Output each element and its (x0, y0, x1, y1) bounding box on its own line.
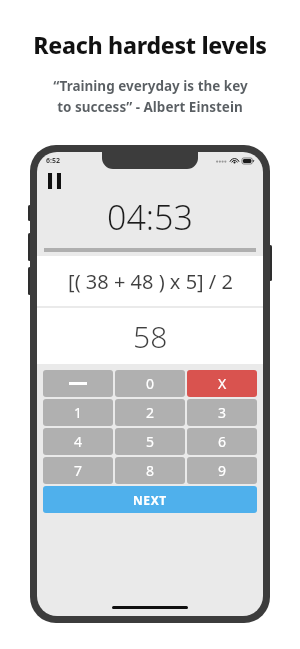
button[interactable]: 1 (43, 399, 113, 426)
button[interactable]: 2 (115, 399, 185, 426)
staticText: NEXT (133, 492, 167, 508)
staticText: 2 (146, 403, 155, 422)
staticText: 6 (218, 432, 227, 451)
button[interactable]: 8 (115, 457, 185, 484)
button[interactable]: 0 (115, 370, 185, 397)
button[interactable]: 3 (187, 399, 257, 426)
staticText: 6:52 (46, 156, 60, 166)
staticText: Reach hardest levels (33, 29, 267, 60)
staticText: 1 (74, 403, 83, 422)
button[interactable]: 7 (43, 457, 113, 484)
staticText: 8 (146, 461, 155, 480)
staticText: 58 (133, 316, 168, 357)
staticText: 4 (74, 432, 83, 451)
button[interactable] (43, 370, 113, 397)
staticText: 04:53 (107, 194, 193, 240)
button[interactable]: 5 (115, 428, 185, 455)
button[interactable]: NEXT (43, 486, 257, 513)
button[interactable]: 6 (187, 428, 257, 455)
staticText: “Training everyday is the key (53, 77, 248, 95)
staticText: X (218, 374, 227, 393)
staticText: 5 (146, 432, 155, 451)
staticText: to success” - Albert Einstein (57, 98, 243, 116)
button[interactable]: Pause (44, 171, 64, 191)
button[interactable]: 4 (43, 428, 113, 455)
staticText: 0 (146, 374, 155, 393)
staticText: 9 (218, 461, 227, 480)
staticText: 3 (218, 403, 227, 422)
staticText: [( 38 + 48 ) x 5] / 2 (68, 268, 233, 295)
button[interactable]: 9 (187, 457, 257, 484)
button[interactable]: X (187, 370, 257, 397)
staticText: 7 (74, 461, 83, 480)
